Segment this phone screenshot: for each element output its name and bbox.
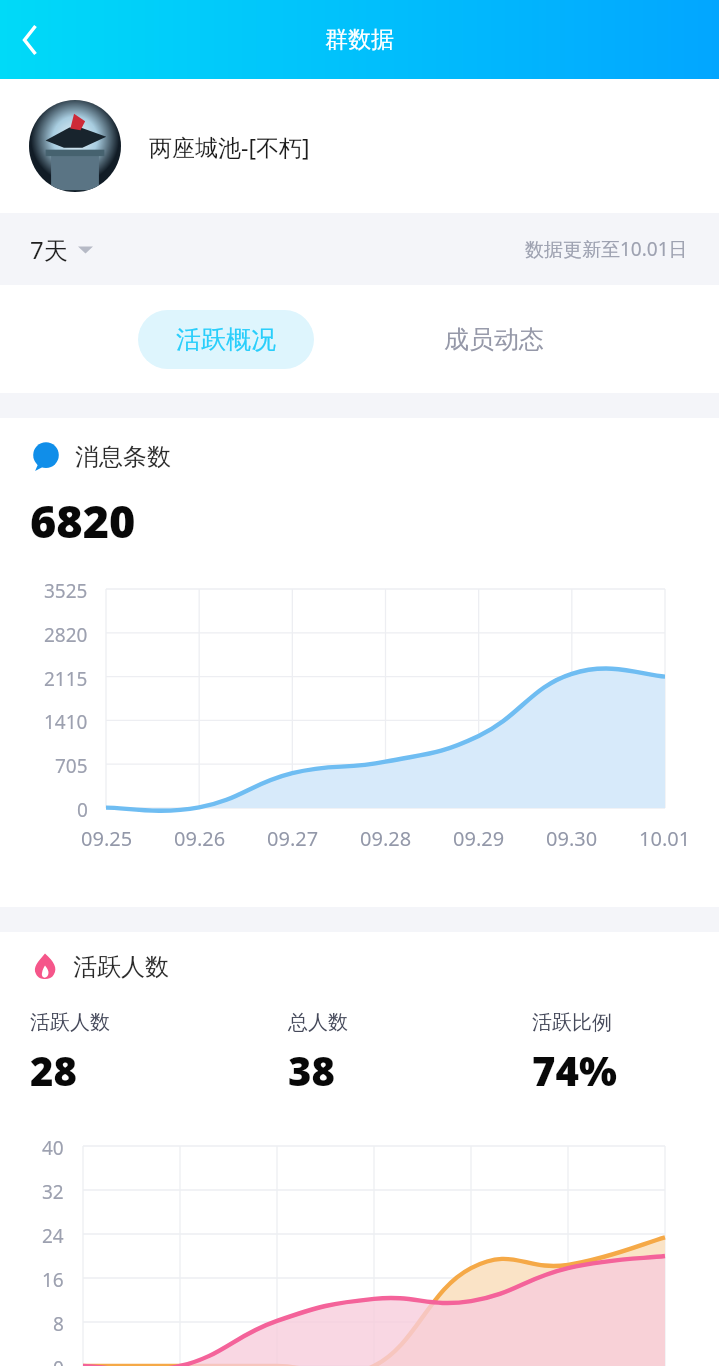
staticText: 活跃比例 bbox=[532, 1010, 612, 1035]
staticText: 活跃人数 bbox=[73, 952, 169, 982]
staticText: 705 bbox=[55, 753, 88, 779]
staticText: 7天 bbox=[30, 233, 68, 266]
staticText: 40 bbox=[42, 1135, 64, 1161]
button[interactable]: Back bbox=[2, 12, 58, 68]
button[interactable]: 两座城池-[不朽] bbox=[0, 79, 719, 213]
staticText: 2115 bbox=[44, 666, 88, 692]
staticText: 38 bbox=[288, 1043, 335, 1097]
button[interactable]: 成员动态 bbox=[406, 310, 582, 369]
staticText: 09.25 bbox=[81, 825, 133, 852]
staticText: 8 bbox=[53, 1311, 64, 1337]
staticText: 09.30 bbox=[546, 825, 598, 852]
button[interactable]: 7天 bbox=[30, 233, 93, 266]
staticText: 总人数 bbox=[288, 1010, 348, 1035]
staticText: 数据更新至10.01日 bbox=[525, 236, 688, 262]
staticText: 6820 bbox=[30, 490, 136, 551]
staticText: 0 bbox=[77, 797, 88, 823]
staticText: 两座城池-[不朽] bbox=[149, 131, 310, 162]
staticText: 0 bbox=[53, 1355, 64, 1366]
staticText: 成员动态 bbox=[444, 324, 544, 355]
staticText: 32 bbox=[42, 1179, 64, 1205]
staticText: 活跃人数 bbox=[30, 1010, 110, 1035]
staticText: 10.01 bbox=[639, 825, 691, 852]
staticText: 09.26 bbox=[174, 825, 226, 852]
staticText: 消息条数 bbox=[75, 442, 171, 472]
staticText: 09.27 bbox=[267, 825, 319, 852]
staticText: 群数据 bbox=[325, 25, 394, 54]
staticText: 3525 bbox=[44, 578, 88, 604]
staticText: 活跃概况 bbox=[176, 324, 276, 355]
staticText: 1410 bbox=[44, 709, 88, 735]
staticText: 2820 bbox=[44, 622, 88, 648]
staticText: 09.29 bbox=[453, 825, 505, 852]
staticText: 74% bbox=[532, 1043, 617, 1097]
button[interactable]: 活跃概况 bbox=[138, 310, 314, 369]
staticText: 28 bbox=[30, 1043, 77, 1097]
staticText: 16 bbox=[42, 1267, 64, 1293]
staticText: 24 bbox=[42, 1223, 64, 1249]
staticText: 09.28 bbox=[360, 825, 412, 852]
